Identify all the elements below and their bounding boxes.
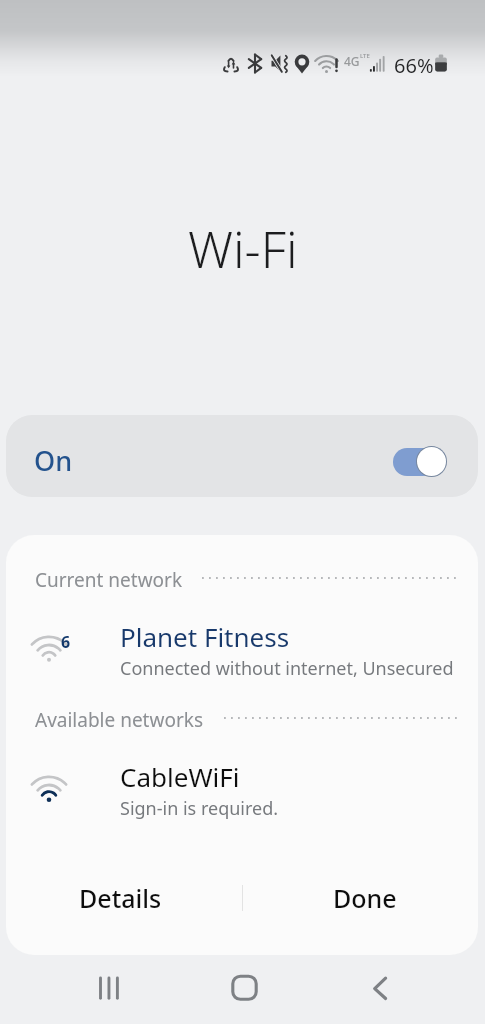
staticText: Sign-in is required. — [120, 796, 279, 821]
button[interactable]: Recent apps — [67, 955, 151, 1024]
staticText: Done — [333, 881, 397, 915]
staticText: Current network — [35, 567, 183, 593]
staticText: CableWiFi — [120, 759, 240, 794]
button[interactable]: Details — [6, 869, 238, 927]
staticText: Wi-Fi — [188, 215, 298, 283]
staticText: LTE — [360, 52, 370, 60]
button[interactable]: Done — [247, 869, 478, 927]
staticText: Available networks — [35, 707, 203, 733]
staticText: 6 — [61, 631, 71, 653]
button[interactable]: CableWiFi — [6, 750, 478, 822]
staticText: Connected without internet, Unsecured — [120, 656, 454, 681]
button[interactable]: Home — [202, 955, 286, 1024]
staticText: 66% — [394, 52, 434, 79]
button[interactable]: 6 — [6, 610, 478, 682]
button[interactable]: On — [6, 415, 478, 497]
staticText: 4G — [344, 53, 360, 69]
staticText: On — [34, 442, 73, 479]
staticText: Details — [79, 881, 162, 915]
staticText: Planet Fitness — [120, 619, 290, 654]
button[interactable]: Back — [338, 955, 422, 1024]
